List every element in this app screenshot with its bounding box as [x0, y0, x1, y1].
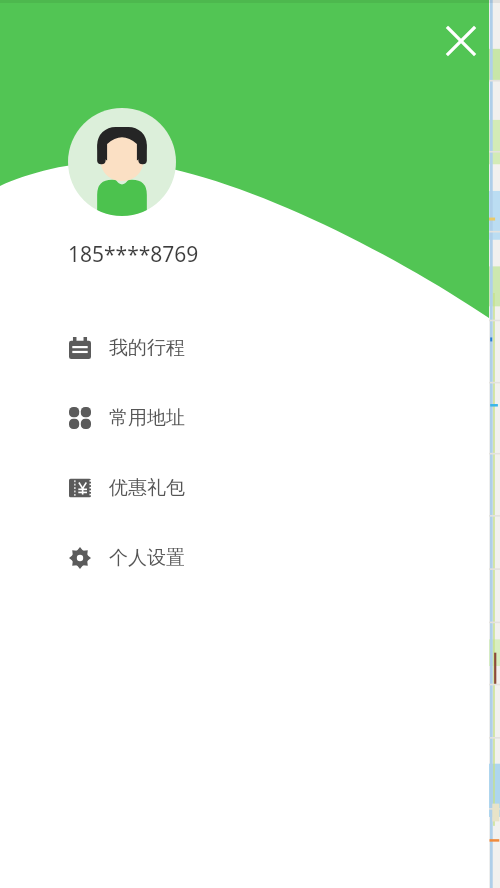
button[interactable]: 我的行程 [0, 313, 489, 383]
staticText: 我的行程 [109, 336, 185, 360]
staticText: 个人设置 [109, 546, 185, 570]
staticText: 优惠礼包 [109, 476, 185, 500]
button[interactable]: 个人设置 [0, 523, 489, 593]
staticText: 185****8769 [68, 240, 199, 269]
button[interactable] [68, 108, 176, 216]
button[interactable]: 常用地址 [0, 383, 489, 453]
button[interactable]: 优惠礼包 [0, 453, 489, 523]
button[interactable]: Close [437, 17, 485, 65]
staticText: 常用地址 [109, 406, 185, 430]
